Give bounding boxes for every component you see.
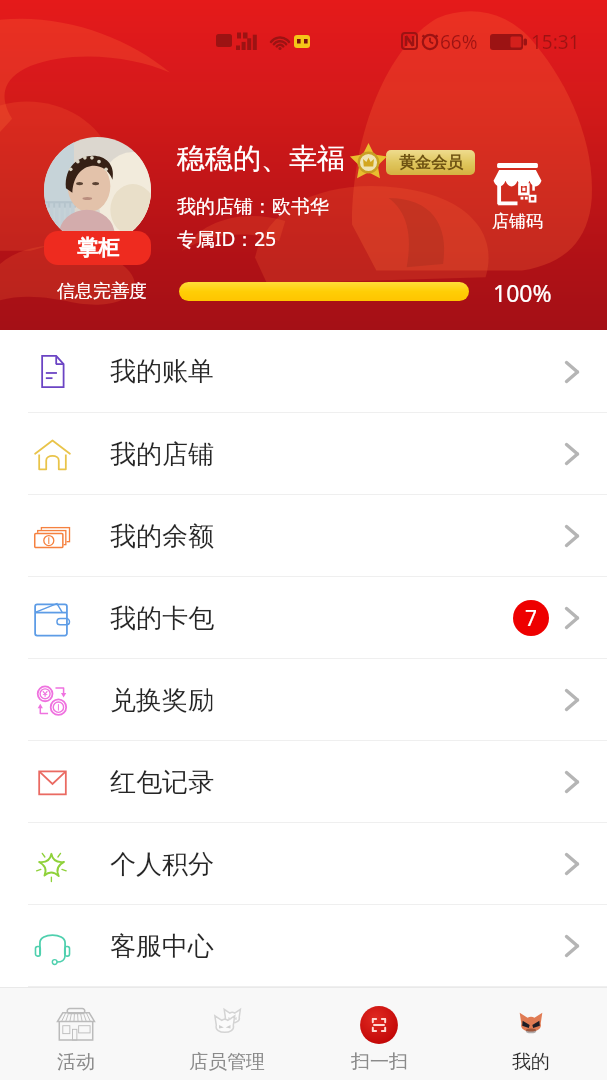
staticText: 我的店铺 (110, 438, 214, 471)
button[interactable]: 个人积分 (0, 823, 607, 905)
staticText: 我的 (512, 1050, 550, 1074)
staticText: 专属ID：25 (177, 226, 277, 252)
staticText: 稳稳的、幸福 (177, 141, 345, 176)
staticText: 个人积分 (110, 848, 214, 881)
staticText: 我的账单 (110, 355, 214, 388)
staticText: 红包记录 (110, 766, 214, 799)
staticText: 活动 (57, 1050, 95, 1074)
button[interactable]: 我的卡包 (0, 577, 607, 659)
staticText: 100% (493, 277, 552, 308)
staticText: 店铺码 (492, 211, 543, 232)
staticText: 我的店铺：欧书华 (177, 195, 329, 219)
staticText: 兑换奖励 (110, 684, 214, 717)
button[interactable]: 店铺码 (483, 162, 551, 232)
staticText: 扫一扫 (351, 1050, 408, 1074)
staticText: 黄金会员 (399, 153, 463, 173)
staticText: 店员管理 (189, 1050, 265, 1074)
button[interactable]: 我的账单 (0, 330, 607, 413)
button[interactable]: 红包记录 (0, 741, 607, 823)
staticText: 我的卡包 (110, 602, 214, 635)
staticText: 7 (525, 604, 538, 633)
button[interactable]: 活动 (0, 988, 151, 1080)
staticText: 掌柜 (77, 235, 119, 261)
staticText: 我的余额 (110, 520, 214, 553)
button[interactable]: 店员管理 (151, 988, 303, 1080)
button[interactable]: 我的店铺 (0, 413, 607, 495)
staticText: 15:31 (531, 29, 580, 55)
button[interactable]: 我的 (455, 988, 607, 1080)
button[interactable]: 客服中心 (0, 905, 607, 987)
staticText: 信息完善度 (57, 280, 147, 303)
button[interactable]: 我的余额 (0, 495, 607, 577)
staticText: 66% (440, 29, 478, 55)
button[interactable]: 扫一扫 (303, 988, 455, 1080)
button[interactable]: 兑换奖励 (0, 659, 607, 741)
staticText: 客服中心 (110, 930, 214, 963)
